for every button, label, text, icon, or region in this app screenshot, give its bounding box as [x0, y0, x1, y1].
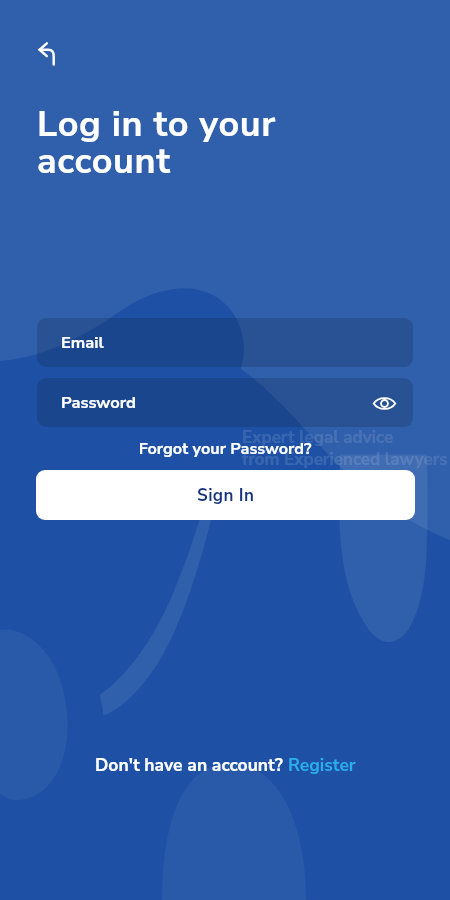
button[interactable]: Show password	[367, 386, 401, 420]
staticText: Password	[61, 391, 136, 414]
staticText: Expert legal advice from Experienced law…	[242, 426, 448, 471]
staticText: Sign In	[197, 484, 255, 507]
button[interactable]: Back	[26, 32, 66, 72]
staticText: Register	[288, 753, 356, 777]
button[interactable]: Don't have an account?	[95, 753, 356, 777]
staticText: Don't have an account?	[95, 753, 288, 777]
staticText: Email	[61, 331, 104, 354]
button[interactable]: Email	[37, 318, 413, 367]
button[interactable]: Forgot your Password?	[0, 437, 450, 461]
button[interactable]: Sign In	[36, 470, 415, 520]
button[interactable]: Password	[37, 378, 413, 427]
staticText: Log in to your account	[37, 100, 276, 186]
